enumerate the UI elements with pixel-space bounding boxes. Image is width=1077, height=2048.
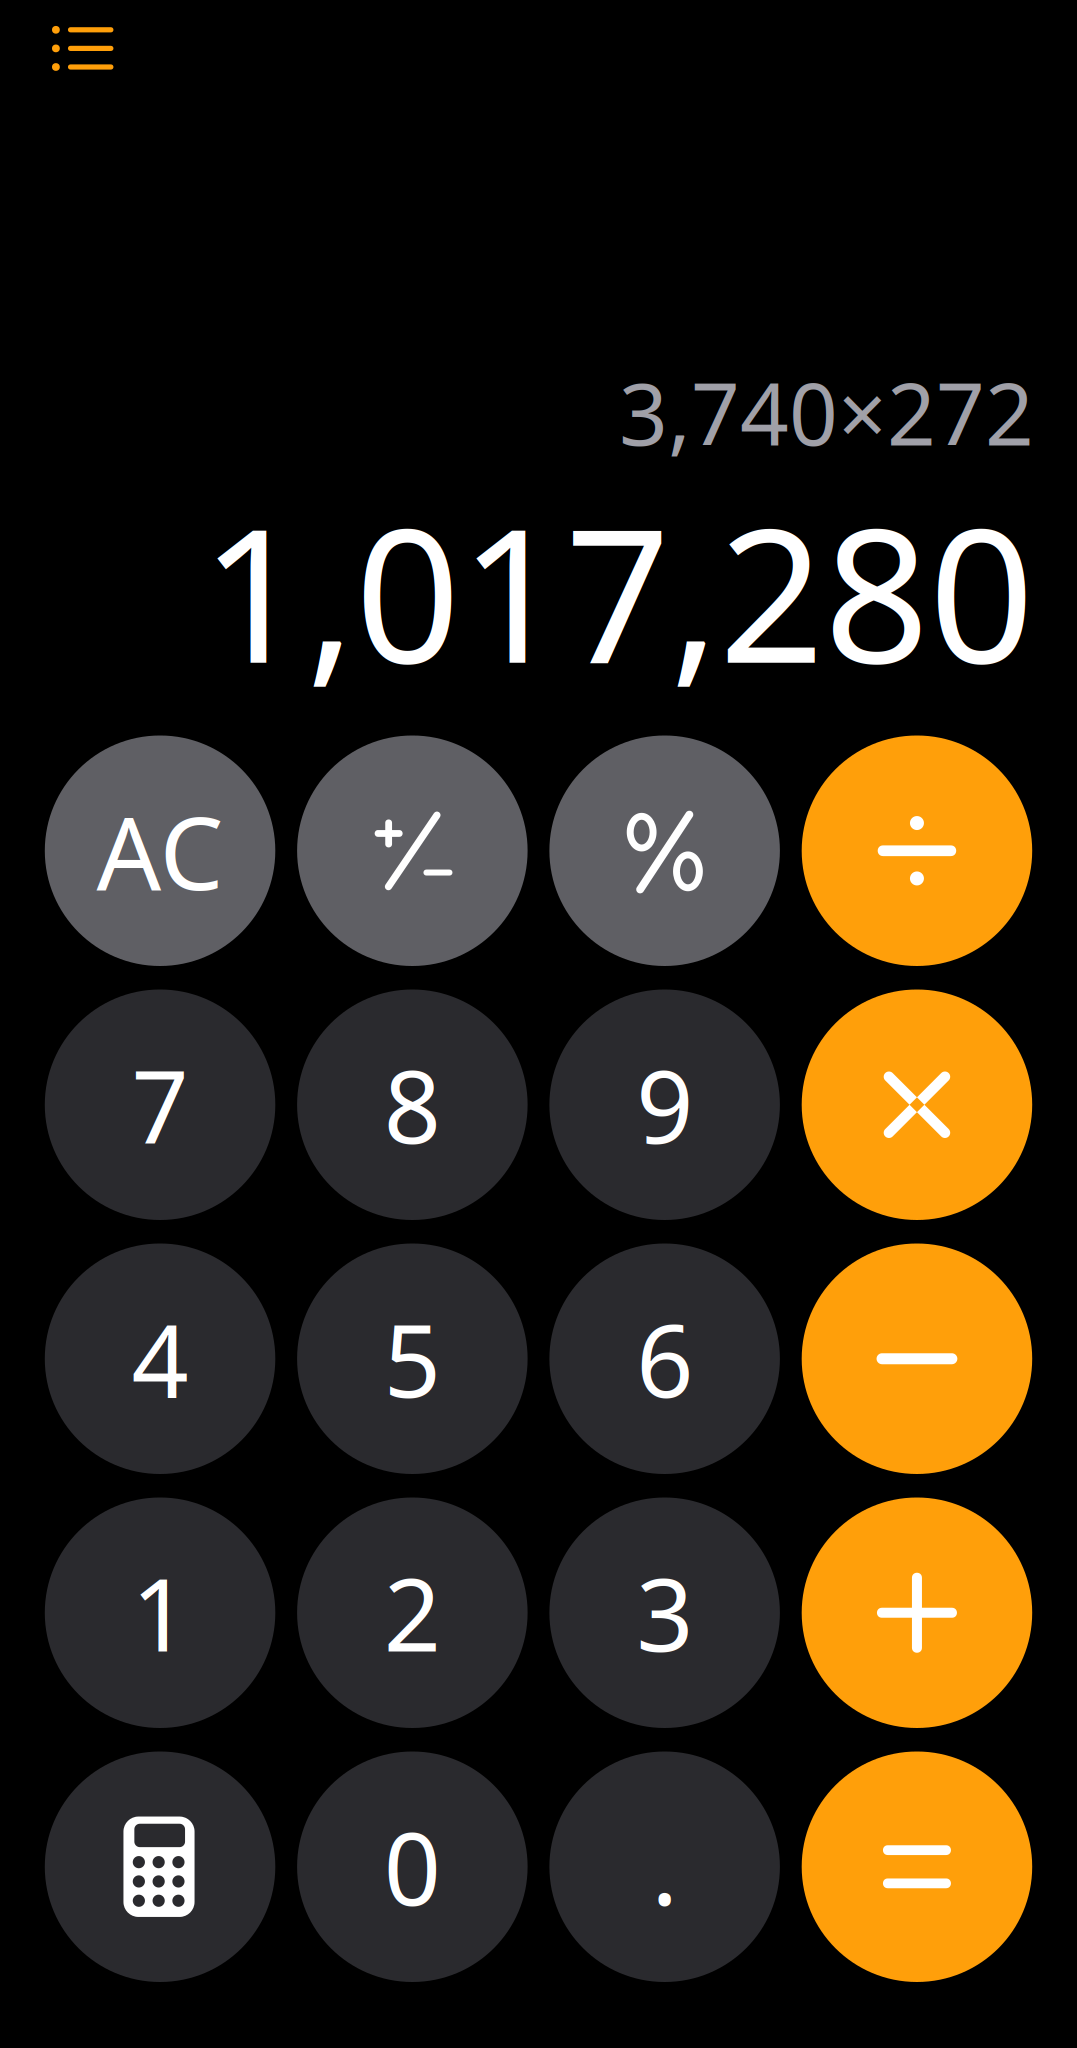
button[interactable]: Divide bbox=[802, 735, 1032, 966]
button[interactable]: Percent bbox=[549, 735, 780, 966]
staticText: AC bbox=[97, 783, 224, 918]
button[interactable]: 0 bbox=[297, 1751, 528, 1982]
staticText: 0 bbox=[384, 1800, 441, 1933]
staticText: . bbox=[651, 1800, 678, 1933]
staticText: 3 bbox=[636, 1546, 693, 1679]
button[interactable]: 2 bbox=[297, 1497, 528, 1728]
staticText: 7 bbox=[132, 1038, 189, 1171]
button[interactable]: 8 bbox=[297, 989, 528, 1220]
staticText: 1,017,280 bbox=[201, 469, 1034, 713]
staticText: 9 bbox=[636, 1038, 693, 1171]
button[interactable]: 1 bbox=[45, 1497, 275, 1728]
button[interactable]: History bbox=[52, 26, 114, 72]
button[interactable]: . bbox=[549, 1751, 780, 1982]
button[interactable]: Calculator bbox=[45, 1751, 275, 1982]
staticText: 2 bbox=[384, 1546, 441, 1679]
staticText: 4 bbox=[132, 1292, 189, 1425]
button[interactable]: Plus minus bbox=[297, 735, 528, 966]
button[interactable]: AC bbox=[45, 735, 275, 966]
staticText: 1 bbox=[132, 1546, 189, 1679]
button[interactable]: Minus bbox=[802, 1243, 1032, 1474]
staticText: 5 bbox=[384, 1292, 441, 1425]
button[interactable]: 9 bbox=[549, 989, 780, 1220]
staticText: 8 bbox=[384, 1038, 441, 1171]
button[interactable]: 6 bbox=[549, 1243, 780, 1474]
button[interactable]: 3 bbox=[549, 1497, 780, 1728]
button[interactable]: Equals bbox=[802, 1751, 1032, 1982]
staticText: 6 bbox=[636, 1292, 693, 1425]
button[interactable]: 5 bbox=[297, 1243, 528, 1474]
button[interactable]: Multiply bbox=[802, 989, 1032, 1220]
staticText: 3,740×272 bbox=[619, 356, 1034, 469]
button[interactable]: 4 bbox=[45, 1243, 275, 1474]
button[interactable]: 7 bbox=[45, 989, 275, 1220]
button[interactable]: Plus bbox=[802, 1497, 1032, 1728]
